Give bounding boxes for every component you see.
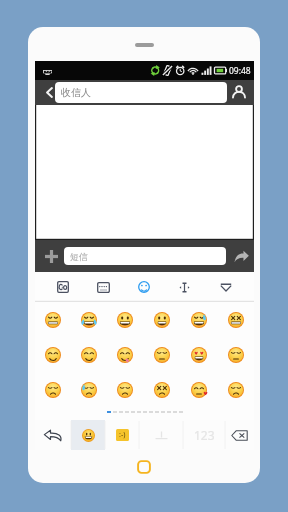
button[interactable]: Emoji (180, 337, 217, 372)
button[interactable]: Emoji (71, 302, 107, 337)
button[interactable]: 收信人 (55, 82, 227, 103)
button[interactable]: Emoji (35, 337, 71, 372)
button[interactable]: Emoji (35, 302, 71, 337)
button[interactable]: Emoji (107, 372, 143, 407)
button[interactable]: Emoji (217, 337, 254, 372)
button[interactable]: Backspace (225, 420, 254, 450)
button[interactable]: Back (35, 420, 71, 450)
button[interactable]: Choose contact (225, 80, 253, 105)
button[interactable]: Emoji (180, 372, 217, 407)
button[interactable]: Emoji (71, 372, 107, 407)
button[interactable]: Emoji (35, 372, 71, 407)
button[interactable]: Add attachment (39, 240, 64, 272)
button[interactable]: Emoji (123, 272, 164, 302)
staticText: 123 (194, 427, 215, 443)
button[interactable]: Emoji (217, 372, 254, 407)
button[interactable]: Text cursor (164, 272, 205, 302)
button[interactable]: Emoji (180, 302, 217, 337)
staticText: :-) (119, 430, 126, 440)
button[interactable]: Send (228, 240, 254, 272)
button[interactable]: Emoji (71, 420, 105, 450)
button[interactable]: Emoji (143, 372, 180, 407)
button[interactable]: 123 (183, 420, 225, 450)
button[interactable]: Emoji (143, 302, 180, 337)
staticText: 收信人 (61, 86, 91, 99)
button[interactable]: Emoji (107, 302, 143, 337)
staticText: 09:48 (229, 65, 251, 77)
button[interactable]: Input language (43, 272, 83, 302)
button[interactable]: Emoji (71, 337, 107, 372)
button[interactable]: 短信 (64, 247, 226, 265)
button[interactable]: Home (137, 460, 151, 474)
button[interactable]: Emoji (217, 302, 254, 337)
button[interactable]: Emoji (143, 337, 180, 372)
button[interactable]: Hide keyboard (205, 272, 246, 302)
button[interactable]: Back (37, 80, 62, 105)
button[interactable]: Keyboard (83, 272, 123, 302)
staticText: 短信 (70, 251, 88, 262)
button[interactable]: :-) (105, 420, 139, 450)
button[interactable]: Emoji (107, 337, 143, 372)
